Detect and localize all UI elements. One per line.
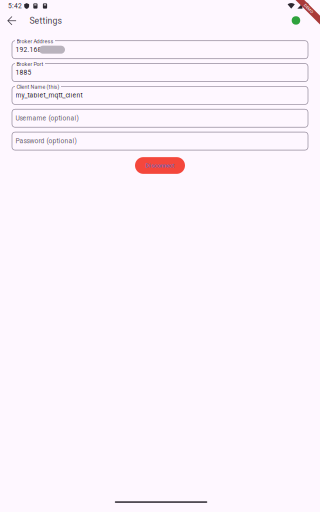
staticText: 1885 [15, 69, 31, 76]
staticText: Password (optional) [15, 137, 76, 145]
staticText: Settings [29, 16, 61, 26]
button[interactable]: Back [2, 11, 22, 31]
staticText: Broker Address [16, 38, 53, 44]
staticText: DEMO [305, 1, 317, 5]
staticText: Username (optional) [15, 114, 78, 122]
staticText: Disconnect [145, 162, 174, 169]
staticText: Broker Port [16, 61, 43, 67]
staticText: 192.168 [15, 46, 41, 54]
staticText: Client Name (this) [16, 84, 59, 90]
staticText: 5:42 [8, 2, 22, 10]
button[interactable]: Disconnect [135, 157, 185, 174]
staticText: my_tablet_mqtt_client [15, 91, 82, 99]
